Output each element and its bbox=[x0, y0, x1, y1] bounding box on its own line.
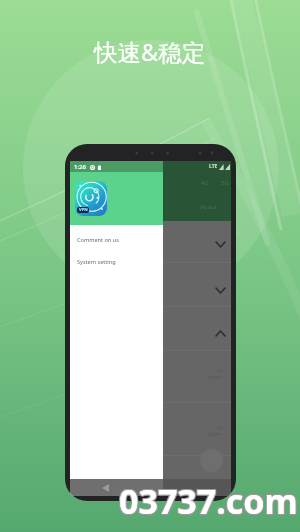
button[interactable]: 5G bbox=[221, 179, 229, 187]
staticText: 03737.com bbox=[118, 477, 297, 523]
other: Back bbox=[102, 484, 109, 492]
staticText: 03737.com bbox=[118, 478, 297, 524]
button[interactable]: System setting bbox=[70, 251, 163, 273]
staticText: up bbox=[216, 423, 223, 430]
staticText: 03737.com bbox=[120, 478, 299, 524]
staticText: 03737.com bbox=[119, 479, 298, 525]
button[interactable]: up bbox=[70, 403, 231, 456]
staticText: 03737.com bbox=[120, 477, 299, 523]
other: Expand bbox=[216, 242, 225, 247]
staticText: down bbox=[208, 373, 223, 380]
staticText: System setting bbox=[77, 258, 116, 266]
staticText: up bbox=[216, 366, 223, 373]
button[interactable]: Comment on us bbox=[70, 229, 163, 251]
button[interactable]: Expand bbox=[70, 221, 231, 263]
staticText: down bbox=[208, 430, 223, 437]
staticText: 4G bbox=[201, 179, 209, 187]
staticText: 03737.com bbox=[118, 479, 297, 525]
staticText: VPN bbox=[79, 207, 88, 213]
staticText: 03737.com bbox=[120, 479, 299, 525]
button[interactable]: 4G bbox=[201, 179, 209, 187]
staticText: Comment on us bbox=[77, 236, 119, 244]
staticText: LTE bbox=[209, 163, 218, 170]
other: Collapse bbox=[216, 331, 225, 336]
button[interactable]: Expand bbox=[70, 263, 231, 307]
staticText: 03737.com bbox=[119, 478, 298, 524]
button[interactable]: About bbox=[200, 203, 218, 211]
staticText: 03737.com bbox=[119, 477, 298, 523]
button[interactable]: Connect bbox=[200, 449, 223, 472]
staticText: 快速&稳定 bbox=[94, 36, 206, 68]
button[interactable]: up bbox=[70, 351, 231, 403]
staticText: 1:26 bbox=[74, 163, 86, 171]
staticText: About bbox=[200, 203, 218, 211]
staticText: 5G bbox=[221, 179, 229, 187]
button[interactable]: Collapse bbox=[70, 307, 231, 351]
other: Expand bbox=[216, 288, 225, 293]
